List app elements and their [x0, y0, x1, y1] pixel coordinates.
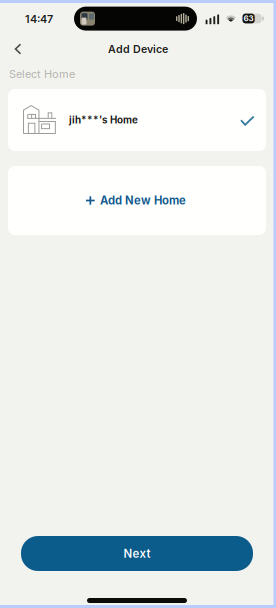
staticText: Next: [123, 547, 150, 560]
staticText: 63: [244, 13, 254, 23]
staticText: jih***'s Home: [69, 114, 138, 126]
button[interactable]: Add New Home: [8, 166, 266, 235]
staticText: Select Home: [9, 67, 75, 81]
staticText: Add Device: [108, 42, 168, 55]
button[interactable]: Back: [1, 37, 35, 61]
staticText: 14:47: [25, 12, 53, 26]
staticText: Add New Home: [100, 194, 186, 207]
button[interactable]: jih***'s Home: [8, 89, 266, 151]
button[interactable]: Next: [21, 536, 253, 571]
